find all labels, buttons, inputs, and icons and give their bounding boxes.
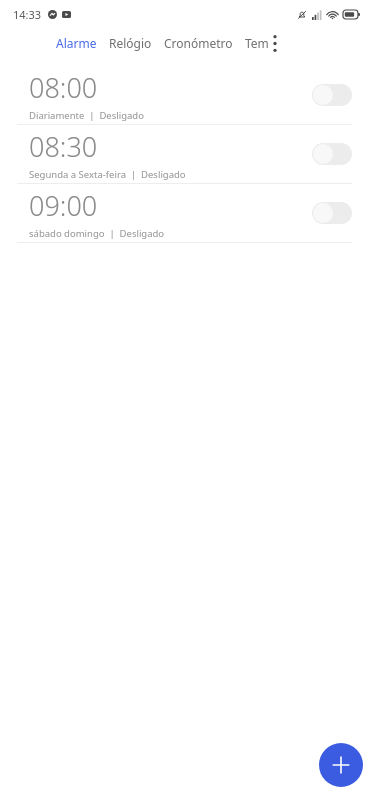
button[interactable]: 08:00 — [0, 66, 369, 124]
button[interactable]: 09:00 — [0, 184, 369, 242]
staticText: Relógio — [109, 35, 152, 51]
button[interactable]: Alarme — [56, 35, 97, 51]
staticText: sábado domingo | Desligado — [29, 227, 165, 240]
staticText: 08:00 — [29, 69, 98, 106]
button[interactable]: Cronómetro — [164, 35, 233, 51]
button[interactable]: Ativar alarme — [312, 84, 352, 106]
staticText: 14:33 — [13, 7, 42, 22]
button[interactable]: Adicionar alarme — [319, 743, 363, 787]
button[interactable]: 08:30 — [0, 125, 369, 183]
button[interactable]: Ativar alarme — [312, 143, 352, 165]
staticText: Alarme — [56, 35, 97, 51]
staticText: 09:00 — [29, 187, 98, 224]
button[interactable]: Temporizador — [245, 35, 269, 51]
button[interactable]: Mais opções — [266, 30, 284, 56]
staticText: 08:30 — [29, 128, 98, 165]
button[interactable]: Ativar alarme — [312, 202, 352, 224]
staticText: Cronómetro — [164, 35, 233, 51]
staticText: Diariamente | Desligado — [29, 109, 144, 122]
staticText: Temporizador — [245, 35, 269, 51]
staticText: Segunda a Sexta-feira | Desligado — [29, 168, 186, 181]
button[interactable]: Relógio — [109, 35, 152, 51]
